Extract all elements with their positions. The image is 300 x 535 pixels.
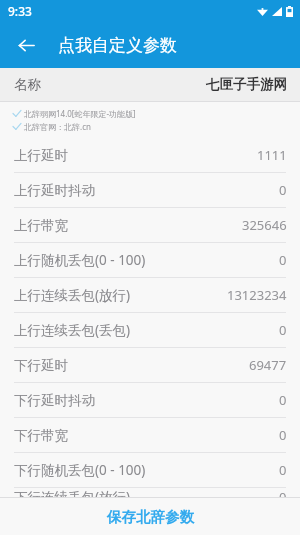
button[interactable]: 下行延时: [0, 347, 300, 382]
staticText: 0: [279, 488, 287, 497]
staticText: 13123234: [227, 286, 287, 304]
staticText: 1111: [257, 146, 287, 164]
staticText: 上行带宽: [14, 217, 68, 234]
staticText: 9:33: [8, 3, 32, 19]
staticText: 七匣子手游网: [206, 76, 287, 93]
staticText: 0: [279, 426, 287, 444]
button[interactable]: 上行随机丢包(0 - 100): [0, 242, 300, 277]
button[interactable]: 下行延时抖动: [0, 382, 300, 417]
staticText: 点我自定义参数: [58, 35, 177, 56]
staticText: 名称: [14, 76, 41, 93]
staticText: 保存北辞参数: [107, 508, 194, 526]
staticText: 上行延时抖动: [14, 182, 95, 199]
button[interactable]: 上行连续丢包(丢包): [0, 312, 300, 347]
staticText: 上行连续丢包(放行): [14, 286, 131, 304]
staticText: 69477: [249, 356, 287, 374]
staticText: 325646: [242, 216, 287, 234]
button[interactable]: 上行延时: [0, 138, 300, 172]
staticText: 上行随机丢包(0 - 100): [14, 251, 146, 269]
staticText: 下行连续丢包(放行): [14, 488, 131, 497]
button[interactable]: 上行带宽: [0, 207, 300, 242]
staticText: 上行连续丢包(丢包): [14, 321, 131, 339]
staticText: 0: [279, 461, 287, 479]
staticText: 0: [279, 251, 287, 269]
button[interactable]: Back: [9, 28, 43, 62]
staticText: 北辞弱网14.0[蛇年限定-功能版]: [24, 108, 136, 119]
button[interactable]: 保存北辞参数: [0, 498, 300, 535]
staticText: 0: [279, 391, 287, 409]
staticText: 0: [279, 321, 287, 339]
staticText: 下行延时: [14, 357, 68, 374]
staticText: 0: [279, 181, 287, 199]
staticText: 下行随机丢包(0 - 100): [14, 461, 146, 479]
staticText: 下行延时抖动: [14, 392, 95, 409]
button[interactable]: 上行延时抖动: [0, 172, 300, 207]
button[interactable]: 下行连续丢包(放行): [0, 487, 300, 497]
button[interactable]: 下行带宽: [0, 417, 300, 452]
staticText: 下行带宽: [14, 427, 68, 444]
button[interactable]: 下行随机丢包(0 - 100): [0, 452, 300, 487]
staticText: 上行延时: [14, 147, 68, 164]
button[interactable]: 上行连续丢包(放行): [0, 277, 300, 312]
staticText: 北辞官网：北辞.cn: [24, 121, 91, 132]
